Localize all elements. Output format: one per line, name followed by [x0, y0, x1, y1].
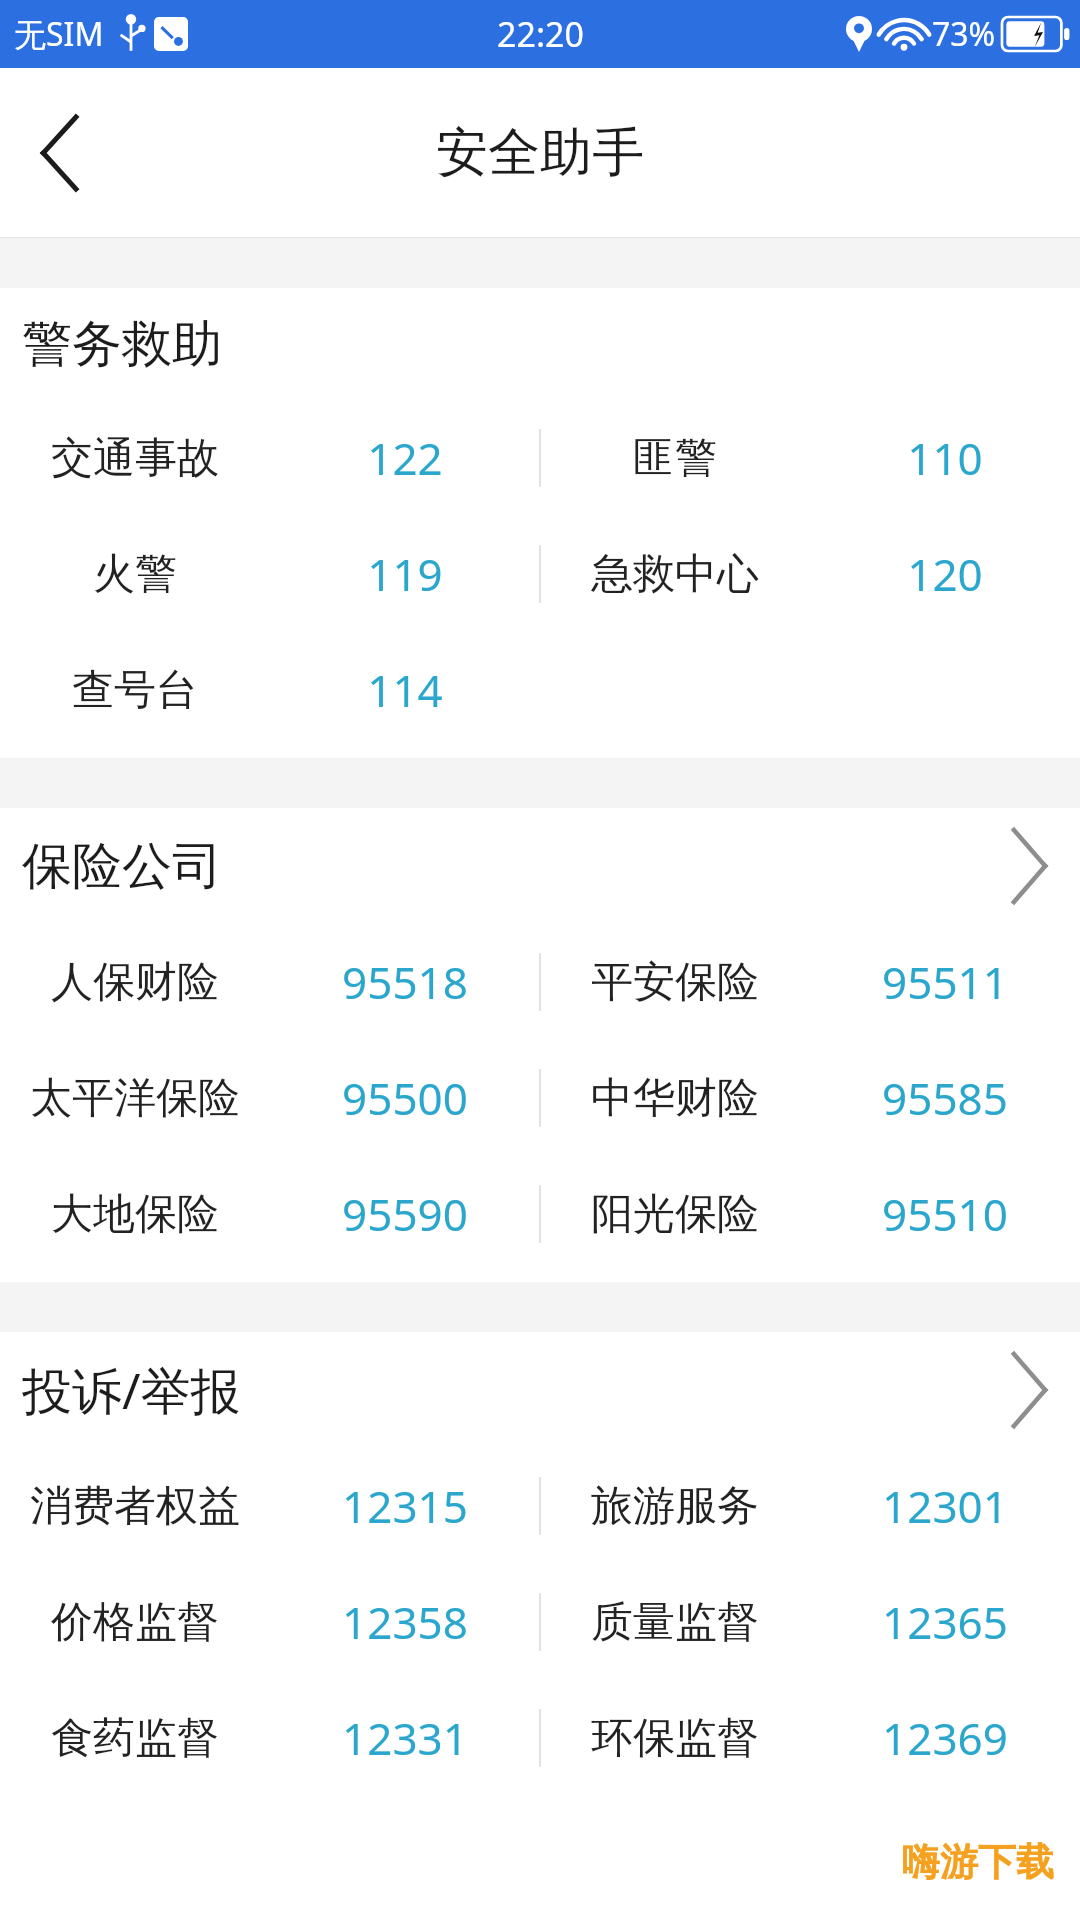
staticText: 阳光保险 — [591, 1188, 759, 1241]
button[interactable]: 查号台 — [0, 632, 540, 748]
button[interactable]: 投诉/举报 — [0, 1332, 1080, 1448]
button[interactable]: 质量监督 — [540, 1564, 1080, 1680]
staticText: 投诉/举报 — [22, 1356, 241, 1424]
staticText: 22:20 — [497, 11, 584, 57]
staticText: 警务救助 — [22, 313, 222, 376]
staticText: 73% — [932, 12, 996, 56]
staticText: 嗨游下载 — [902, 1838, 1054, 1886]
staticText: 人保财险 — [51, 956, 219, 1009]
staticText: 大地保险 — [51, 1188, 219, 1241]
staticText: 95500 — [342, 1068, 468, 1128]
staticText: 12369 — [882, 1708, 1008, 1768]
staticText: 95511 — [882, 952, 1008, 1012]
button[interactable]: 火警 — [0, 516, 540, 632]
button[interactable]: 平安保险 — [540, 924, 1080, 1040]
button[interactable]: 大地保险 — [0, 1156, 540, 1272]
staticText: 质量监督 — [591, 1596, 759, 1649]
staticText: 交通事故 — [51, 432, 219, 485]
staticText: 保险公司 — [22, 835, 222, 898]
staticText: 12315 — [342, 1476, 468, 1536]
staticText: 120 — [907, 544, 983, 604]
staticText: 中华财险 — [591, 1072, 759, 1125]
staticText: 12331 — [342, 1708, 468, 1768]
staticText: 火警 — [93, 548, 177, 601]
staticText: 12301 — [882, 1476, 1008, 1536]
button[interactable]: 急救中心 — [540, 516, 1080, 632]
staticText: 环保监督 — [591, 1712, 759, 1765]
staticText: 95510 — [882, 1184, 1008, 1244]
button[interactable]: 消费者权益 — [0, 1448, 540, 1564]
staticText: 太平洋保险 — [30, 1072, 240, 1125]
staticText: 119 — [367, 544, 443, 604]
button[interactable]: 匪警 — [540, 400, 1080, 516]
staticText: 12358 — [342, 1592, 468, 1652]
button[interactable]: 人保财险 — [0, 924, 540, 1040]
button[interactable]: 阳光保险 — [540, 1156, 1080, 1272]
button[interactable]: 环保监督 — [540, 1680, 1080, 1796]
staticText: 安全助手 — [436, 120, 644, 186]
button[interactable]: 返回 — [0, 93, 120, 213]
staticText: 匪警 — [633, 432, 717, 485]
button[interactable]: 太平洋保险 — [0, 1040, 540, 1156]
staticText: 110 — [907, 428, 983, 488]
staticText: 95518 — [342, 952, 468, 1012]
staticText: 急救中心 — [591, 548, 759, 601]
button[interactable]: 食药监督 — [0, 1680, 540, 1796]
staticText: 查号台 — [72, 664, 198, 717]
button[interactable]: 保险公司 — [0, 808, 1080, 924]
button[interactable]: 交通事故 — [0, 400, 540, 516]
button[interactable]: 价格监督 — [0, 1564, 540, 1680]
staticText: 无SIM — [14, 12, 104, 56]
staticText: 平安保险 — [591, 956, 759, 1009]
button[interactable]: 旅游服务 — [540, 1448, 1080, 1564]
staticText: 旅游服务 — [591, 1480, 759, 1533]
staticText: 消费者权益 — [30, 1480, 240, 1533]
staticText: 食药监督 — [51, 1712, 219, 1765]
staticText: 114 — [367, 660, 443, 720]
staticText: 95590 — [342, 1184, 468, 1244]
staticText: 95585 — [882, 1068, 1008, 1128]
staticText: 价格监督 — [51, 1596, 219, 1649]
staticText: 122 — [367, 428, 443, 488]
staticText: 12365 — [882, 1592, 1008, 1652]
button[interactable]: 中华财险 — [540, 1040, 1080, 1156]
